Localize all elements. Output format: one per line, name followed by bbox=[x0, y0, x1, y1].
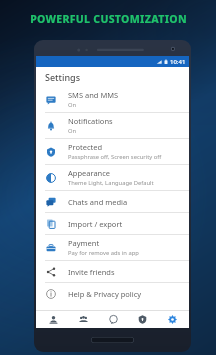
button[interactable]: Chats bbox=[100, 310, 126, 328]
button[interactable]: SMS and MMS bbox=[36, 87, 189, 112]
staticText: Theme Light, Language Default bbox=[68, 179, 154, 187]
button[interactable]: Notifications bbox=[36, 113, 189, 138]
staticText: Appearance bbox=[68, 168, 111, 178]
button[interactable]: Import / export bbox=[36, 213, 189, 234]
button[interactable]: Chats and media bbox=[36, 191, 189, 212]
staticText: Import / export bbox=[68, 219, 123, 229]
button[interactable]: Settings bbox=[159, 310, 185, 328]
staticText: Passphrase off, Screen security off bbox=[68, 153, 162, 161]
button[interactable]: Invite friends bbox=[36, 261, 189, 282]
button[interactable]: Protected bbox=[36, 139, 189, 164]
staticText: On bbox=[68, 127, 77, 135]
staticText: Protected bbox=[68, 142, 103, 152]
staticText: SMS and MMS bbox=[68, 90, 119, 100]
button[interactable]: Payment bbox=[36, 235, 189, 260]
staticText: POWERFUL CUSTOMIZATION bbox=[30, 12, 187, 26]
staticText: 10:41 bbox=[170, 58, 186, 66]
button[interactable]: Appearance bbox=[36, 165, 189, 190]
button[interactable]: Groups bbox=[70, 310, 96, 328]
staticText: Chats and media bbox=[68, 197, 128, 207]
staticText: Invite friends bbox=[68, 267, 115, 277]
staticText: Notifications bbox=[68, 116, 113, 126]
staticText: Help & Privacy policy bbox=[68, 289, 142, 299]
staticText: On bbox=[68, 101, 77, 109]
staticText: Settings bbox=[45, 71, 81, 83]
staticText: Payment bbox=[68, 238, 100, 248]
button[interactable]: Secure bbox=[129, 310, 155, 328]
button[interactable]: Contacts bbox=[40, 310, 66, 328]
staticText: Pay for remove ads in app bbox=[68, 249, 139, 257]
button[interactable]: Help & Privacy policy bbox=[36, 283, 189, 304]
